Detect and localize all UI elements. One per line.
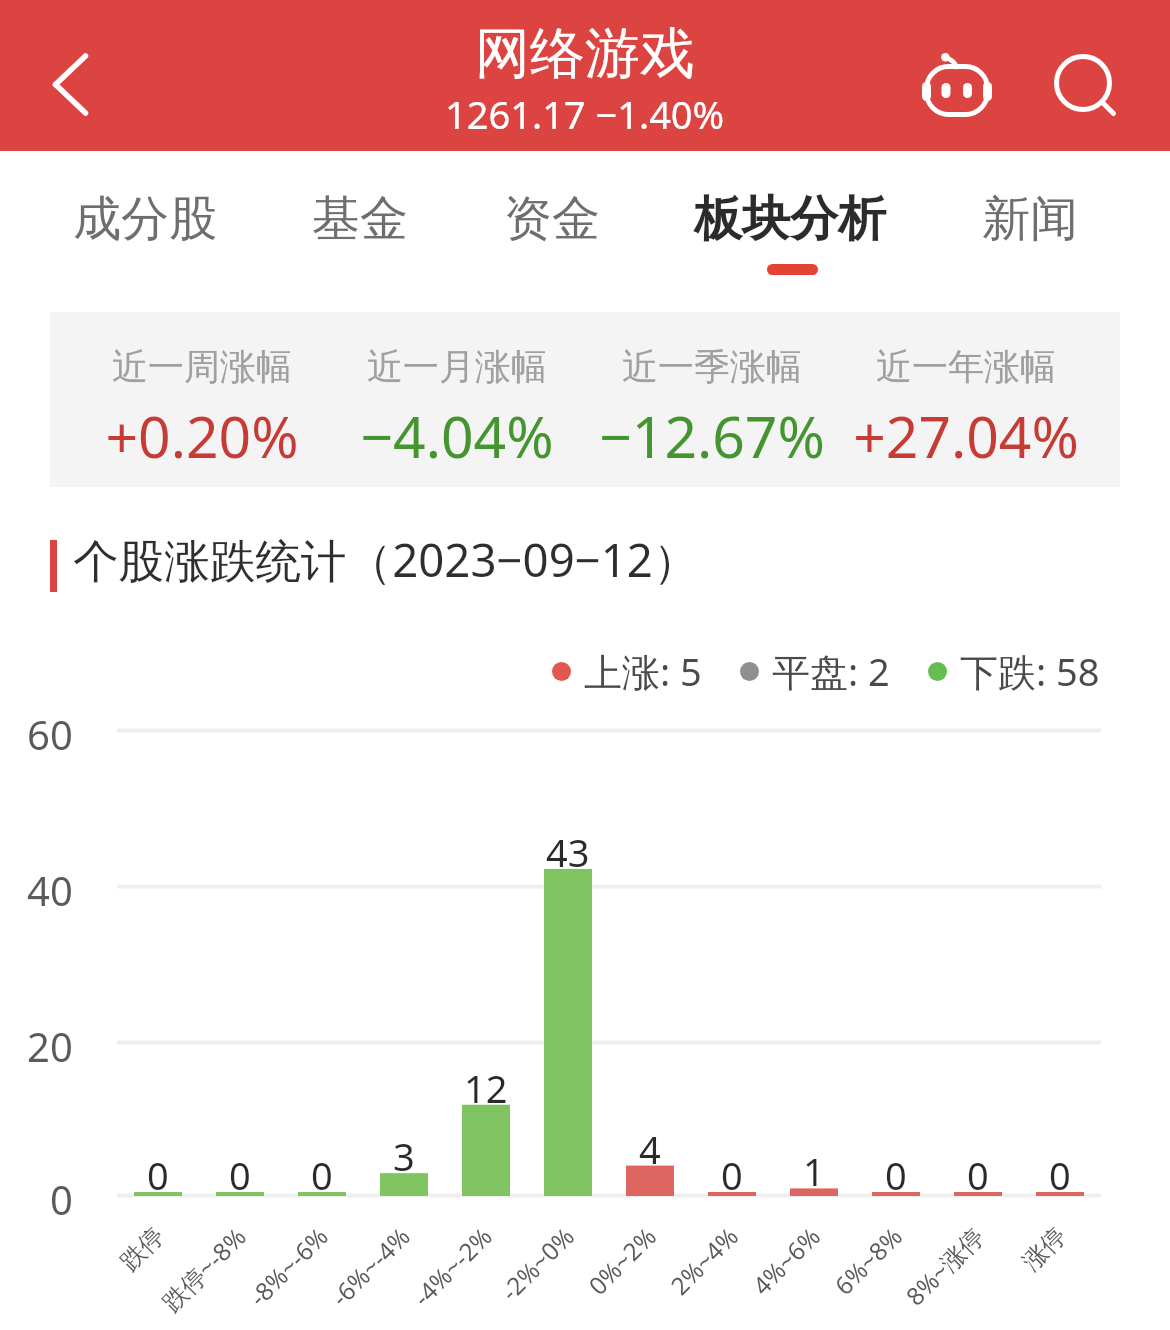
staticText: 上涨: 5 (584, 645, 702, 697)
staticText: 0%~2% (581, 1220, 663, 1302)
button[interactable]: 资金 (456, 162, 648, 282)
staticText: -8%~-6% (242, 1220, 335, 1313)
button[interactable]: 新闻 (934, 162, 1126, 282)
staticText: 0 (50, 1172, 73, 1226)
staticText: 平盘: 2 (772, 645, 890, 697)
staticText: 板块分析 (694, 189, 886, 249)
staticText: 3 (393, 1130, 415, 1182)
button[interactable]: Search (1046, 44, 1126, 124)
staticText: 8%~涨停 (898, 1220, 991, 1312)
staticText: 6%~8% (827, 1220, 909, 1302)
staticText: -2%~0% (493, 1220, 581, 1307)
staticText: -6%~-4% (324, 1220, 417, 1313)
staticText: 60 (27, 707, 73, 761)
staticText: 近一周涨幅 (112, 344, 292, 389)
button[interactable]: 板块分析 (672, 162, 908, 282)
staticText: -4%~-2% (406, 1220, 499, 1313)
staticText: 跌停~-8% (155, 1220, 253, 1318)
button[interactable]: 成分股 (39, 162, 251, 282)
staticText: 40 (27, 863, 73, 917)
staticText: 资金 (504, 189, 600, 249)
staticText: 近一月涨幅 (367, 344, 547, 389)
staticText: 新闻 (982, 189, 1078, 249)
button[interactable]: AI assistant (917, 44, 997, 124)
staticText: 1 (803, 1145, 825, 1197)
staticText: 0 (147, 1149, 169, 1201)
staticText: 基金 (312, 189, 408, 249)
staticText: 0 (229, 1149, 251, 1201)
staticText: 个股涨跌统计（2023−09−12） (73, 528, 699, 590)
staticText: 近一季涨幅 (622, 344, 802, 389)
staticText: 网络游戏 (475, 19, 695, 88)
staticText: 2%~4% (663, 1220, 745, 1302)
button[interactable]: Back (20, 25, 120, 125)
staticText: 0 (721, 1149, 743, 1201)
staticText: 0 (967, 1149, 989, 1201)
staticText: 近一年涨幅 (876, 344, 1056, 389)
staticText: +0.20% (105, 397, 299, 475)
staticText: −4.04% (360, 397, 554, 475)
staticText: 0 (1049, 1149, 1071, 1201)
staticText: 跌停 (114, 1220, 170, 1277)
staticText: 1261.17 −1.40% (445, 88, 725, 140)
staticText: 成分股 (73, 189, 217, 249)
staticText: 0 (885, 1149, 907, 1201)
staticText: 4%~6% (745, 1220, 827, 1302)
button[interactable]: 基金 (264, 162, 456, 282)
staticText: 4 (639, 1123, 661, 1175)
staticText: 20 (27, 1019, 73, 1073)
staticText: 43 (546, 826, 590, 878)
staticText: 12 (464, 1062, 508, 1114)
staticText: 0 (311, 1149, 333, 1201)
staticText: 涨停 (1016, 1220, 1072, 1277)
staticText: +27.04% (853, 397, 1079, 475)
staticText: 下跌: 58 (960, 645, 1100, 697)
staticText: −12.67% (599, 397, 825, 475)
